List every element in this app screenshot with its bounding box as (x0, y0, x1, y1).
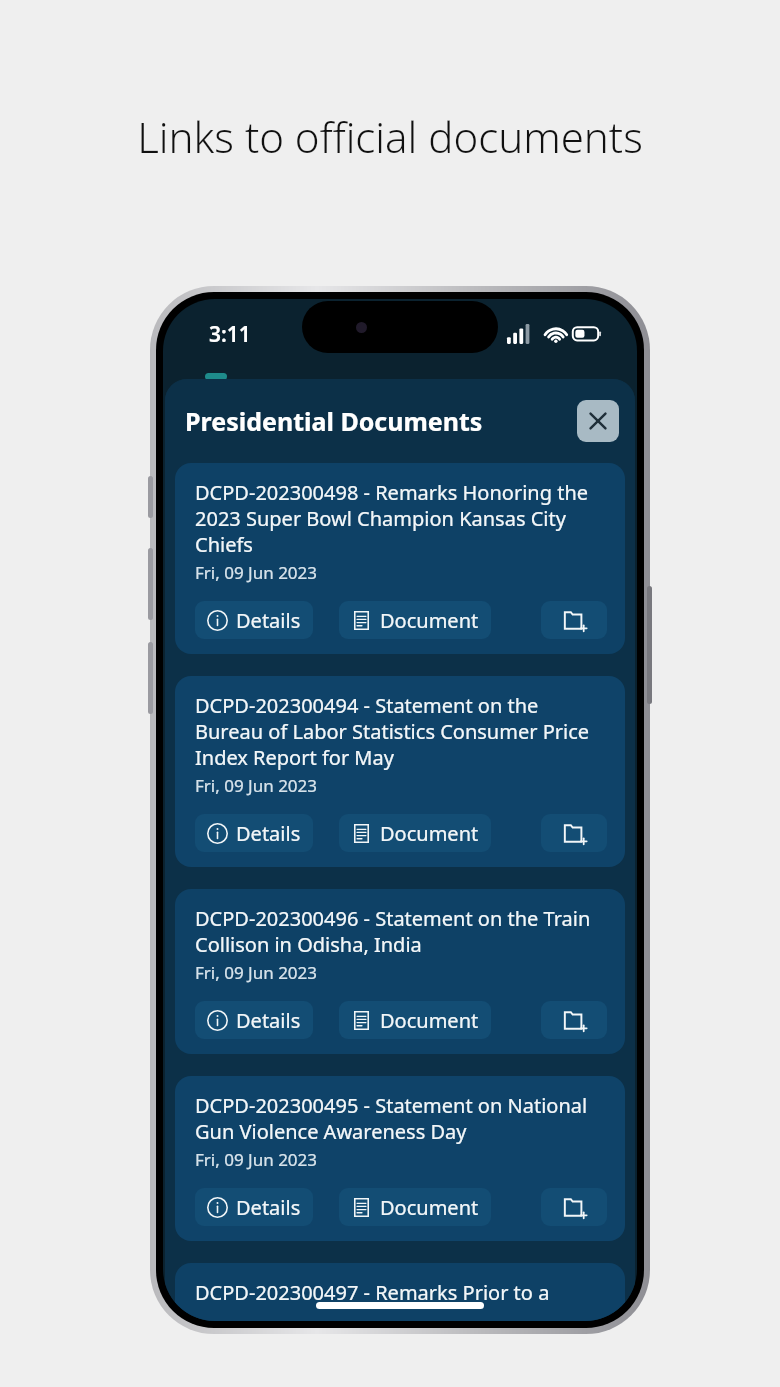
staticText: Details (236, 607, 301, 634)
button[interactable]: Details (195, 814, 313, 852)
button[interactable]: DCPD-202300494 - Statement on the Bureau… (175, 676, 625, 867)
button[interactable]: Document (339, 601, 491, 639)
button[interactable]: Details (195, 1188, 313, 1226)
button[interactable]: Close (577, 400, 619, 442)
button[interactable]: DCPD-202300495 - Statement on National G… (175, 1076, 625, 1241)
button[interactable]: Add to folder (541, 1001, 607, 1039)
button[interactable]: Add to folder (541, 1188, 607, 1226)
staticText: Document (380, 607, 479, 634)
staticText: Document (380, 1194, 479, 1221)
staticText: Fri, 09 Jun 2023 (195, 961, 318, 984)
button[interactable]: Details (195, 1001, 313, 1039)
staticText: DCPD-202300497 - Remarks Prior to a Meet… (195, 1279, 607, 1307)
staticText: Details (236, 1007, 301, 1034)
staticText: DCPD-202300498 - Remarks Honoring the 20… (195, 479, 607, 558)
staticText: DCPD-202300496 - Statement on the Train … (195, 905, 607, 958)
staticText: 3:11 (209, 320, 251, 349)
staticText: Fri, 09 Jun 2023 (195, 561, 318, 584)
staticText: Links to official documents (137, 108, 643, 165)
staticText: Details (236, 820, 301, 847)
button[interactable]: DCPD-202300498 - Remarks Honoring the 20… (175, 463, 625, 654)
staticText: DCPD-202300494 - Statement on the Bureau… (195, 692, 607, 771)
button[interactable]: Add to folder (541, 814, 607, 852)
button[interactable]: Document (339, 1001, 491, 1039)
button[interactable]: Details (195, 601, 313, 639)
button[interactable]: DCPD-202300496 - Statement on the Train … (175, 889, 625, 1054)
button[interactable]: Document (339, 1188, 491, 1226)
button[interactable]: Add to folder (541, 601, 607, 639)
staticText: Details (236, 1194, 301, 1221)
button[interactable]: Document (339, 814, 491, 852)
staticText: Presidential Documents (185, 404, 577, 438)
staticText: Fri, 09 Jun 2023 (195, 1148, 318, 1171)
staticText: Fri, 09 Jun 2023 (195, 774, 318, 797)
staticText: Document (380, 1007, 479, 1034)
staticText: Document (380, 820, 479, 847)
staticText: DCPD-202300495 - Statement on National G… (195, 1092, 607, 1145)
button[interactable]: DCPD-202300497 - Remarks Prior to a Meet… (175, 1263, 625, 1321)
